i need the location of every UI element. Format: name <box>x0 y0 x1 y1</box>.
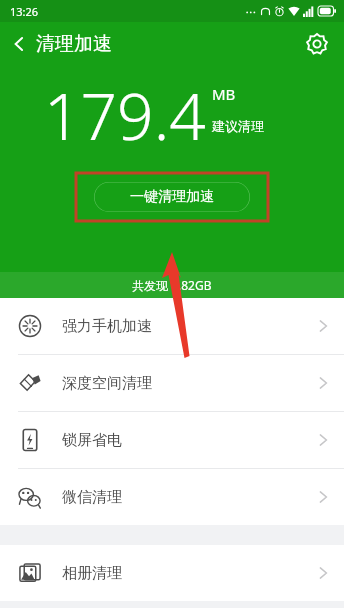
staticText: 清理加速 <box>36 32 112 56</box>
button[interactable]: 强力手机加速 <box>0 298 344 355</box>
staticText: 共发现 7.82GB <box>132 277 212 293</box>
staticText: 一键清理加速 <box>130 188 214 206</box>
staticText: 建议清理 <box>212 118 264 134</box>
staticText: 13:26 <box>10 4 39 19</box>
staticText: 强力手机加速 <box>62 317 152 336</box>
button[interactable]: 深度空间清理 <box>0 355 344 412</box>
button[interactable]: 一键清理加速 <box>94 182 250 212</box>
staticText: 锁屏省电 <box>62 431 122 450</box>
button[interactable]: Back <box>0 26 124 62</box>
button[interactable]: 相册清理 <box>0 545 344 601</box>
other: Back <box>12 34 26 54</box>
staticText: 深度空间清理 <box>62 374 152 393</box>
button[interactable]: 微信清理 <box>0 469 344 525</box>
staticText: 微信清理 <box>62 488 122 507</box>
button[interactable]: Settings <box>300 27 334 61</box>
button[interactable]: 锁屏省电 <box>0 412 344 469</box>
staticText: MB <box>212 84 236 104</box>
staticText: 相册清理 <box>62 564 122 583</box>
staticText: 179.4 <box>44 72 206 159</box>
